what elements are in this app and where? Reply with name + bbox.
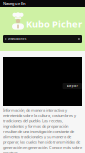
button[interactable]: Navegue En xyxy=(0,0,26,7)
staticText: Kubo Picher xyxy=(26,18,82,30)
staticText: Navegue En xyxy=(3,1,26,6)
staticText: Información, de manera interactiva y ent… xyxy=(3,107,82,153)
staticText: Aceptar xyxy=(67,84,78,88)
button[interactable]: Instrucciones xyxy=(3,35,82,43)
button[interactable]: Aceptar xyxy=(63,83,82,89)
staticText: Instrucciones xyxy=(8,37,26,41)
